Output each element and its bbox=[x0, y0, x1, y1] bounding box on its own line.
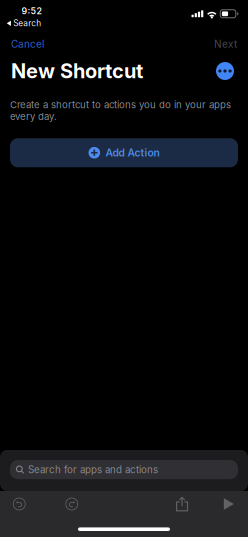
button[interactable]: Undo bbox=[0, 493, 38, 515]
button[interactable]: Search for apps and actions bbox=[0, 450, 248, 491]
button[interactable]: Share bbox=[163, 493, 201, 515]
button[interactable]: Next bbox=[203, 33, 248, 55]
staticText: Add Action bbox=[105, 146, 159, 159]
staticText: Create a shortcut to actions you do in y… bbox=[10, 99, 231, 122]
button[interactable]: Cancel bbox=[0, 33, 55, 55]
staticText: 9:52 bbox=[21, 6, 41, 16]
button[interactable]: Redo bbox=[52, 493, 91, 515]
staticText: Next bbox=[214, 38, 237, 50]
button[interactable]: Add Action bbox=[10, 138, 238, 167]
button[interactable]: Shortcut details bbox=[213, 59, 237, 83]
staticText: Search for apps and actions bbox=[28, 464, 158, 475]
button[interactable]: Run shortcut bbox=[209, 493, 248, 515]
staticText: Search bbox=[13, 18, 41, 28]
staticText: New Shortcut bbox=[11, 59, 143, 83]
staticText: Cancel bbox=[11, 38, 44, 50]
